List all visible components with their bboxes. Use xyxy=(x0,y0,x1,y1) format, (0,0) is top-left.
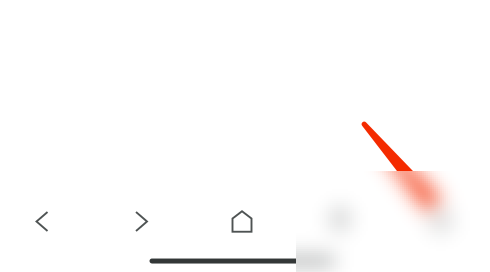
button[interactable]: Back xyxy=(6,196,78,246)
button[interactable]: Forward xyxy=(105,196,177,246)
button[interactable]: Home xyxy=(206,196,278,246)
